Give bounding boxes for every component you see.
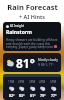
button[interactable]: 5PM: [50, 80, 57, 98]
staticText: Heavy showers are building offshore and …: [6, 38, 58, 49]
staticText: 82°: [9, 93, 15, 98]
button[interactable]: 1PM: [3, 74, 61, 100]
staticText: 81°: [30, 93, 36, 98]
staticText: + AI Hints: [19, 13, 45, 20]
staticText: 4PM: [39, 80, 46, 84]
staticText: 2PM: [18, 80, 25, 84]
staticText: 83°: [19, 93, 25, 98]
button[interactable]: 3PM: [29, 80, 36, 98]
staticText: 5PM: [50, 80, 57, 84]
button[interactable]: 1PM: [8, 80, 15, 98]
button[interactable]: 81°: [3, 53, 61, 72]
button[interactable]: Alert: [54, 45, 57, 48]
button[interactable]: 4PM: [39, 80, 46, 98]
staticText: 81°: [16, 55, 35, 71]
staticText: Rain Forecast: [7, 2, 58, 12]
staticText: 1PM: [8, 80, 15, 84]
button[interactable]: 2PM: [18, 80, 25, 98]
staticText: 3PM: [29, 80, 36, 84]
staticText: H 86° L 71°: [38, 63, 54, 67]
staticText: Mostly cloudy: [38, 58, 58, 62]
button[interactable]: AI Insight: [3, 22, 61, 51]
staticText: AI Insight: [10, 24, 24, 28]
staticText: 77°: [51, 93, 57, 98]
staticText: 79°: [40, 93, 46, 98]
staticText: Rainstorm: [6, 29, 32, 36]
